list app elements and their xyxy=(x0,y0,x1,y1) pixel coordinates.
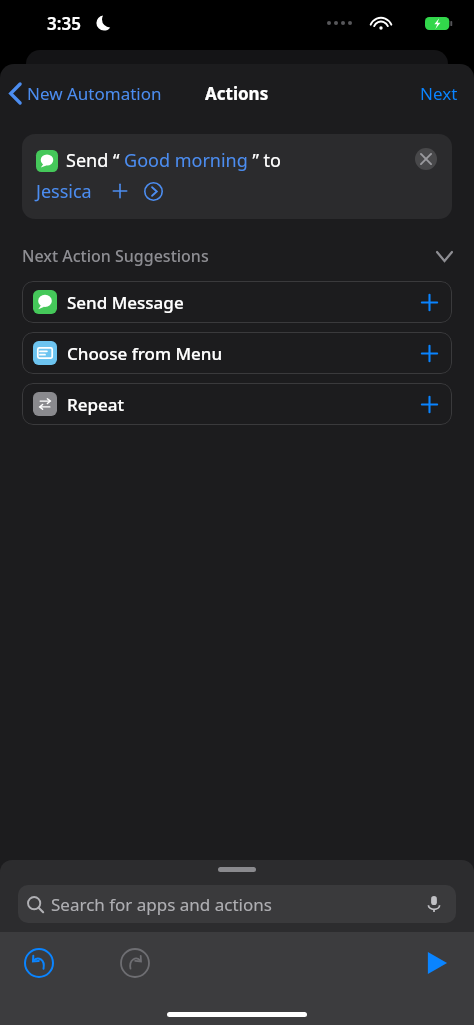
button[interactable]: New Automation xyxy=(0,71,170,115)
button[interactable]: Undo xyxy=(16,940,62,986)
button[interactable]: Repeat xyxy=(22,383,452,425)
staticText: Repeat xyxy=(67,393,125,416)
button[interactable]: Choose from Menu xyxy=(22,332,452,374)
staticText: Next xyxy=(420,82,458,105)
button[interactable]: Show details xyxy=(140,178,166,204)
button[interactable]: Send Message xyxy=(22,281,452,323)
staticText: Send Message xyxy=(67,291,184,314)
staticText: Jessica xyxy=(36,179,92,204)
button[interactable]: Add recipient xyxy=(108,179,132,203)
button[interactable]: Remove action xyxy=(410,143,442,175)
staticText: New Automation xyxy=(27,82,162,105)
staticText: 3:35 xyxy=(47,12,81,35)
staticText: Search for apps and actions xyxy=(51,893,272,916)
button[interactable]: Next xyxy=(404,71,474,115)
button[interactable]: Search for apps and actions xyxy=(18,885,456,923)
staticText: Send “ Good morning ” to xyxy=(66,148,282,173)
staticText: Choose from Menu xyxy=(67,342,223,365)
button[interactable]: Voice search xyxy=(421,891,447,917)
button[interactable]: Redo xyxy=(112,940,158,986)
staticText: Next Action Suggestions xyxy=(22,245,209,267)
button[interactable]: Next Action Suggestions xyxy=(0,242,474,270)
button[interactable]: Run shortcut xyxy=(414,940,460,986)
staticText: Actions xyxy=(205,82,269,105)
button[interactable]: Send “ Good morning ” to xyxy=(22,134,452,219)
